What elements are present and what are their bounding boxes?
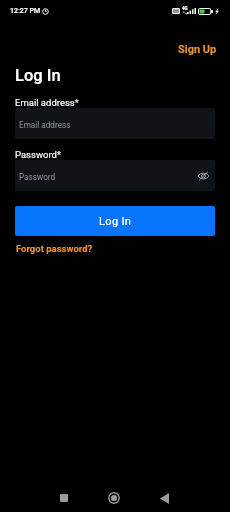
button[interactable]: Log In — [15, 206, 215, 236]
button[interactable]: Back — [152, 486, 176, 510]
staticText: Log In — [15, 66, 61, 85]
staticText: 12:27 PM — [10, 7, 41, 15]
button[interactable]: Password — [15, 160, 215, 191]
button[interactable]: Email address — [15, 108, 215, 139]
button[interactable]: Sign Up — [172, 39, 225, 60]
button[interactable]: Forgot password? — [10, 239, 99, 258]
staticText: Log In — [99, 215, 132, 228]
staticText: Sign Up — [178, 43, 217, 56]
staticText: Password — [19, 172, 56, 182]
staticText: 4G — [182, 6, 188, 11]
staticText: Email address* — [15, 97, 79, 108]
button[interactable]: Show password — [194, 167, 212, 185]
button[interactable]: Recents — [52, 486, 76, 510]
button[interactable]: Home — [102, 486, 126, 510]
staticText: Password* — [15, 149, 62, 160]
staticText: Email address — [19, 120, 71, 130]
staticText: Forgot password? — [16, 243, 93, 254]
